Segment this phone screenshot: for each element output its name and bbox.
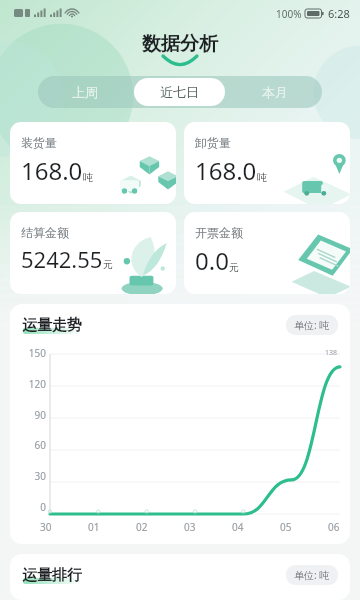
button[interactable]: 本月 [229,78,320,106]
button[interactable]: 装货量 [10,122,176,204]
staticText: 单位: 吨 [294,568,330,582]
staticText: 30 [34,469,46,483]
staticText: 数据分析 [142,32,218,56]
staticText: 120 [28,377,46,391]
staticText: 04 [232,520,244,534]
staticText: 元 [103,258,113,271]
staticText: 05 [280,520,292,534]
staticText: 150 [28,346,46,360]
staticText: 30 [40,520,52,534]
staticText: 运量走势 [22,316,82,335]
button[interactable]: 近七日 [134,78,225,106]
staticText: 0 [40,500,46,514]
staticText: 100% [276,7,302,21]
button[interactable]: 单位: 吨 [294,568,330,582]
staticText: 运量排行 [22,566,82,585]
staticText: 60 [34,438,46,452]
staticText: 02 [136,520,148,534]
staticText: 卸货量 [195,135,231,150]
button[interactable]: 单位: 吨 [294,318,330,332]
button[interactable]: 开票金额 [184,212,350,294]
button[interactable]: 卸货量 [184,122,350,204]
staticText: 03 [184,520,196,534]
staticText: 元 [229,261,239,274]
staticText: 本月 [262,84,288,100]
staticText: 6:28 [328,6,350,21]
staticText: 上周 [72,84,98,100]
staticText: 近七日 [160,84,199,100]
button[interactable]: 上周 [40,78,130,106]
staticText: 装货量 [21,135,57,150]
staticText: 168.0 [195,154,257,187]
staticText: 吨 [83,171,93,184]
staticText: 138 [325,348,338,358]
staticText: 5242.55 [21,244,103,274]
staticText: 结算金额 [21,225,69,240]
staticText: 开票金额 [195,225,243,240]
button[interactable]: 结算金额 [10,212,176,294]
staticText: 168.0 [21,154,83,187]
staticText: 06 [328,520,340,534]
staticText: 吨 [257,171,267,184]
staticText: 单位: 吨 [294,318,330,332]
staticText: 01 [88,520,100,534]
staticText: 90 [34,408,46,422]
staticText: 0.0 [195,244,229,277]
